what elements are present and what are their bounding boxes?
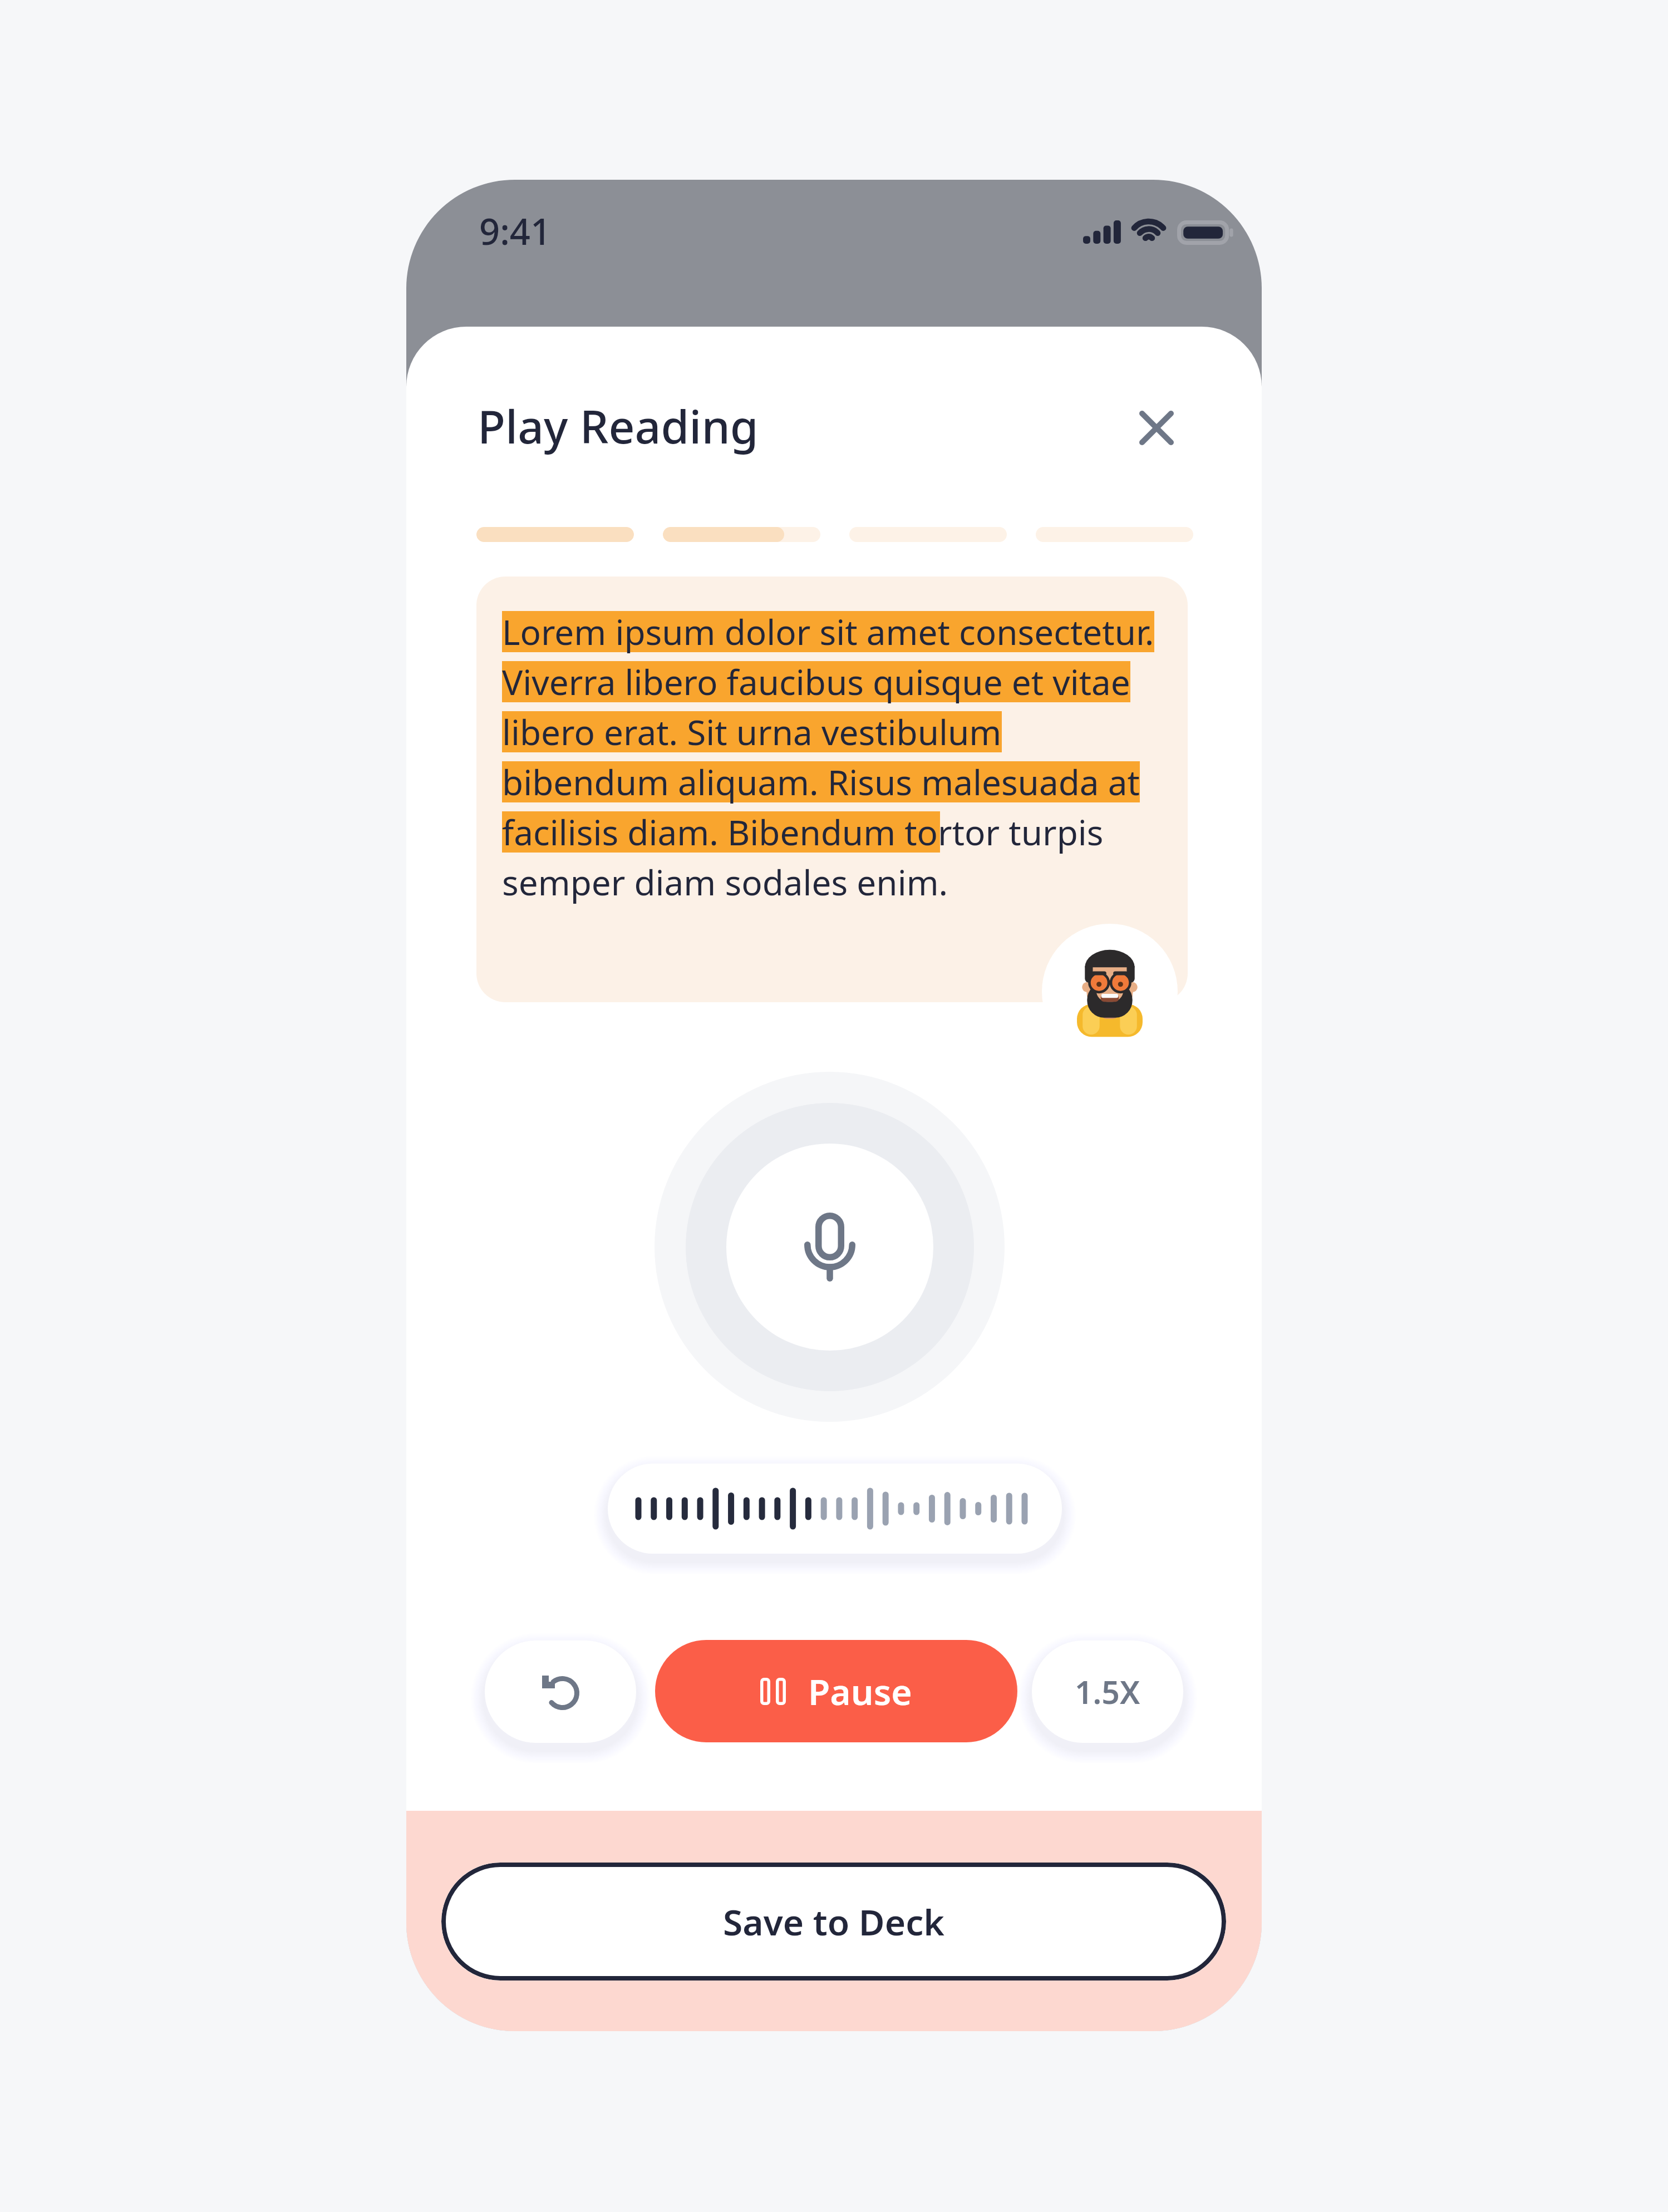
- button[interactable]: Pause: [655, 1640, 1017, 1742]
- staticText: facilisis diam. Bibendum tortor turpis: [502, 809, 1104, 855]
- button[interactable]: Save to Deck: [441, 1863, 1226, 1981]
- staticText: 1.5X: [1075, 1670, 1140, 1713]
- button[interactable]: 1.5X: [1032, 1640, 1183, 1743]
- button[interactable]: Close: [1125, 397, 1188, 459]
- staticText: 9:41: [479, 206, 552, 256]
- staticText: bibendum aliquam. Risus malesuada at: [502, 758, 1140, 805]
- staticText: Pause: [808, 1667, 912, 1716]
- button[interactable]: Restart: [485, 1640, 636, 1743]
- button[interactable]: Record: [655, 1072, 1005, 1422]
- staticText: Save to Deck: [723, 1898, 944, 1946]
- staticText: Lorem ipsum dolor sit amet consectetur.: [502, 608, 1154, 655]
- staticText: Viverra libero faucibus quisque et vitae: [502, 658, 1130, 705]
- button[interactable]: Play Reading: [478, 387, 759, 465]
- staticText: semper diam sodales enim.: [502, 859, 948, 905]
- staticText: Play Reading: [478, 395, 759, 457]
- staticText: libero erat. Sit urna vestibulum: [502, 708, 1002, 755]
